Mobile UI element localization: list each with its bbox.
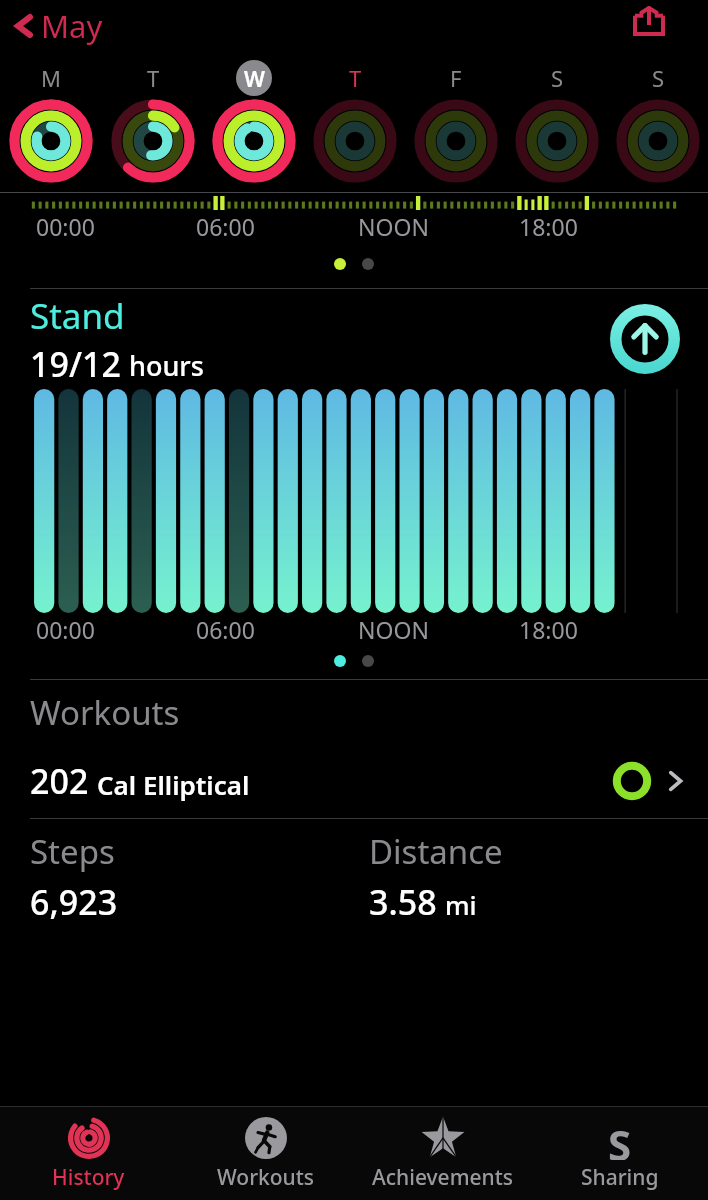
button[interactable]: May bbox=[0, 1, 115, 51]
staticText: NOON bbox=[358, 614, 429, 645]
staticText: 202 bbox=[30, 758, 89, 804]
button[interactable]: M bbox=[0, 52, 102, 192]
staticText: 06:00 bbox=[196, 211, 255, 242]
button[interactable]: S bbox=[607, 52, 708, 192]
staticText: M bbox=[41, 63, 61, 93]
staticText: W bbox=[244, 63, 265, 93]
staticText: 6,923 bbox=[30, 879, 118, 925]
staticText: F bbox=[450, 63, 462, 93]
staticText: Stand bbox=[30, 292, 125, 340]
button[interactable]: Share bbox=[620, 0, 678, 52]
button[interactable]: T bbox=[304, 52, 405, 192]
staticText: May bbox=[41, 5, 103, 47]
button[interactable]: 202 bbox=[0, 744, 708, 818]
staticText: Sharing bbox=[581, 1163, 659, 1192]
staticText: Distance bbox=[369, 829, 503, 874]
button[interactable]: Achievements bbox=[354, 1107, 531, 1200]
button[interactable]: Stand goal reached bbox=[608, 302, 682, 376]
staticText: 19/12 bbox=[30, 341, 121, 387]
staticText: 18:00 bbox=[519, 211, 578, 242]
staticText: 3.58 bbox=[369, 879, 437, 925]
staticText: 00:00 bbox=[36, 614, 95, 645]
staticText: NOON bbox=[358, 211, 429, 242]
staticText: S bbox=[551, 63, 564, 93]
staticText: S bbox=[608, 1116, 632, 1160]
staticText: Cal Elliptical bbox=[97, 767, 250, 802]
button[interactable]: W bbox=[203, 52, 304, 192]
staticText: hours bbox=[129, 347, 204, 384]
button[interactable]: History bbox=[0, 1107, 177, 1200]
staticText: Achievements bbox=[372, 1163, 514, 1192]
button[interactable]: T bbox=[102, 52, 203, 192]
staticText: 06:00 bbox=[196, 614, 255, 645]
button[interactable]: F bbox=[405, 52, 506, 192]
staticText: Workouts bbox=[217, 1163, 315, 1192]
staticText: History bbox=[52, 1163, 125, 1192]
staticText: 18:00 bbox=[519, 614, 578, 645]
button[interactable]: Workouts bbox=[177, 1107, 354, 1200]
button[interactable]: S bbox=[531, 1107, 708, 1200]
button[interactable]: S bbox=[506, 52, 607, 192]
staticText: 00:00 bbox=[36, 211, 95, 242]
staticText: mi bbox=[445, 887, 477, 922]
staticText: Steps bbox=[30, 829, 115, 874]
staticText: T bbox=[349, 63, 362, 93]
staticText: S bbox=[652, 63, 665, 93]
staticText: Workouts bbox=[30, 690, 180, 735]
staticText: T bbox=[147, 63, 160, 93]
